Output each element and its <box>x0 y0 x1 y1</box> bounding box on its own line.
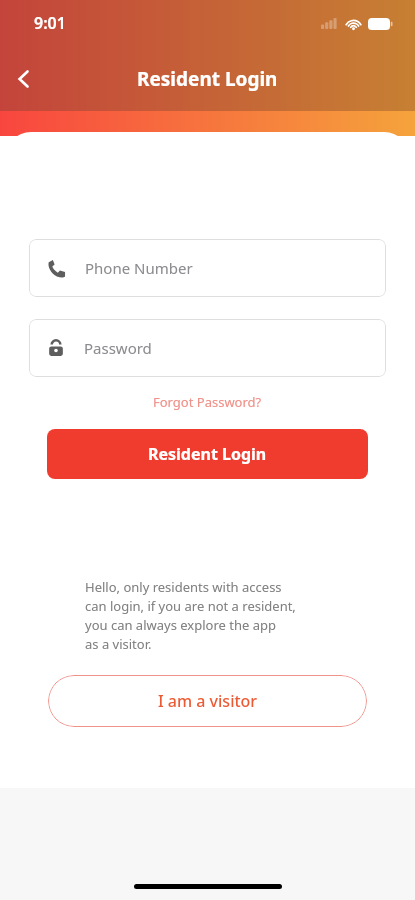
staticText: Password <box>84 338 152 358</box>
staticText: Forgot Password? <box>153 393 262 411</box>
button[interactable]: Phone Number <box>29 239 386 297</box>
button[interactable]: Resident Login <box>47 429 368 479</box>
button[interactable]: Password <box>29 319 386 377</box>
staticText: I am a visitor <box>158 690 258 712</box>
button[interactable]: Forgot Password? <box>145 390 270 414</box>
button[interactable]: Back <box>2 57 46 101</box>
staticText: Resident Login <box>148 443 267 465</box>
staticText: Hello, only residents with access can lo… <box>85 578 397 653</box>
staticText: 9:01 <box>34 12 66 34</box>
staticText: Phone Number <box>85 258 193 278</box>
button[interactable]: I am a visitor <box>48 675 367 727</box>
staticText: Resident Login <box>137 66 278 92</box>
